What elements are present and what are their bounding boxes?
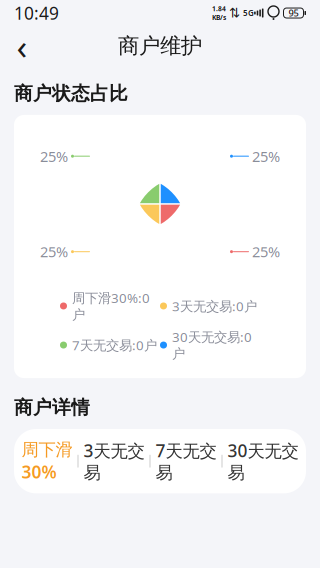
- button[interactable]: Back: [0, 26, 44, 66]
- staticText: 5G: [243, 8, 254, 18]
- staticText: 25%: [40, 242, 68, 261]
- button[interactable]: 3天无交易: [78, 429, 149, 493]
- button[interactable]: 30天无交易: [222, 429, 303, 493]
- staticText: 95: [288, 7, 298, 19]
- button[interactable]: 周下滑30%: [16, 429, 77, 493]
- staticText: ⇅: [229, 5, 240, 20]
- staticText: 30天无交易:0户: [172, 328, 252, 362]
- staticText: KB/s: [212, 13, 226, 22]
- staticText: 25%: [252, 242, 280, 261]
- staticText: 商户详情: [14, 396, 90, 419]
- staticText: 周下滑30%:0户: [72, 289, 150, 323]
- staticText: 商户状态占比: [14, 82, 128, 105]
- staticText: 1.84: [212, 4, 226, 13]
- button[interactable]: 7天无交易: [150, 429, 221, 493]
- staticText: 商户维护: [118, 33, 202, 59]
- staticText: ‹: [16, 23, 27, 69]
- staticText: 25%: [40, 146, 68, 166]
- staticText: 10:49: [14, 1, 59, 24]
- staticText: 7天无交易: [155, 439, 216, 483]
- staticText: 3天无交易:0户: [172, 297, 257, 315]
- staticText: 30天无交易: [227, 439, 298, 483]
- staticText: 7天无交易:0户: [72, 336, 157, 354]
- staticText: 3天无交易: [83, 439, 144, 483]
- staticText: 25%: [252, 146, 280, 166]
- staticText: 周下滑30%: [21, 439, 72, 483]
